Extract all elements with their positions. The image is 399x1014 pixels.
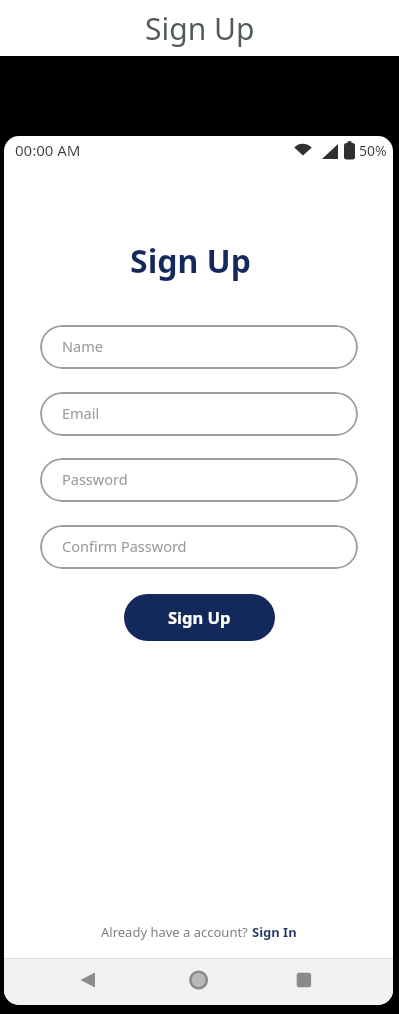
staticText: Sign In xyxy=(252,923,297,941)
button[interactable]: Email xyxy=(40,392,358,436)
staticText: Sign Up xyxy=(145,8,255,49)
staticText: Sign Up xyxy=(130,239,251,283)
staticText: Already have a account? xyxy=(101,923,252,941)
staticText: Password xyxy=(62,469,128,489)
staticText: Sign Up xyxy=(168,606,231,628)
staticText: Confirm Password xyxy=(62,536,187,556)
staticText: Name xyxy=(62,336,103,356)
button[interactable]: Already have a account? xyxy=(101,923,297,941)
button[interactable] xyxy=(263,958,393,1005)
button[interactable]: Confirm Password xyxy=(40,525,358,569)
staticText: 50% xyxy=(359,141,387,160)
staticText: Email xyxy=(62,403,100,423)
button[interactable]: Name xyxy=(40,325,358,369)
button[interactable] xyxy=(133,958,263,1005)
button[interactable]: Password xyxy=(40,458,358,502)
staticText: 00:00 AM xyxy=(15,140,81,160)
button[interactable] xyxy=(4,958,133,1005)
button[interactable]: Sign Up xyxy=(124,594,275,641)
